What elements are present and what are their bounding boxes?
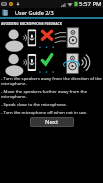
staticText: User Guide 2/3 — [15, 9, 54, 16]
staticText: - Move the speakers further away from th… — [1, 88, 102, 99]
button[interactable]: Next — [30, 117, 74, 127]
staticText: Next — [45, 118, 59, 126]
staticText: - Turn the microphone off when not in us… — [1, 109, 102, 115]
staticText: 5:57 PM — [79, 0, 102, 8]
staticText: - Speak close to the microphone. — [1, 101, 102, 107]
staticText: - Turn the speakers away from the direct… — [1, 75, 102, 86]
button[interactable]: User Guide 2/3 — [0, 8, 103, 17]
staticText: AVOIDING MICROPHONE FEEDBACK — [1, 21, 63, 25]
